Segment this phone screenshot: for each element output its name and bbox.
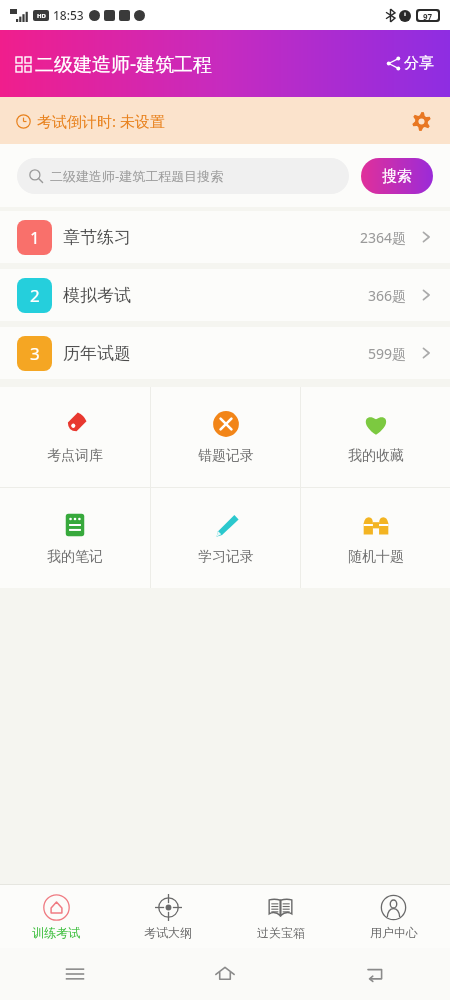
staticText: 97 <box>423 11 433 20</box>
staticText: 考试大纲 <box>144 925 192 940</box>
button[interactable]: 分享 <box>384 50 436 77</box>
button[interactable]: 1 <box>0 211 450 263</box>
button[interactable]: 错题记录 <box>151 387 300 487</box>
staticText: 错题记录 <box>198 447 254 465</box>
staticText: 1 <box>30 226 40 249</box>
staticText: 学习记录 <box>198 548 254 566</box>
other: Home <box>213 962 237 986</box>
button[interactable]: 设置 <box>406 106 436 136</box>
button[interactable]: 考试倒计时: 未设置 <box>0 97 450 144</box>
button[interactable]: 考试大纲 <box>112 885 224 948</box>
staticText: 训练考试 <box>32 925 80 940</box>
button[interactable]: 随机十题 <box>301 488 450 588</box>
staticText: 考试倒计时: 未设置 <box>37 111 165 131</box>
other: Back <box>364 963 386 985</box>
staticText: 用户中心 <box>370 925 418 940</box>
button[interactable]: 3 <box>0 327 450 379</box>
staticText: 2 <box>30 284 40 307</box>
staticText: 366题 <box>368 286 407 305</box>
button[interactable]: 训练考试 <box>0 885 112 948</box>
button[interactable]: 2 <box>0 269 450 321</box>
staticText: 我的收藏 <box>348 447 404 465</box>
staticText: 过关宝箱 <box>257 925 305 940</box>
staticText: 我的笔记 <box>47 548 103 566</box>
other: Recents <box>64 963 86 985</box>
staticText: 搜索 <box>382 167 412 186</box>
staticText: 二级建造师-建筑工程题目搜索 <box>50 167 224 185</box>
staticText: HD <box>37 12 46 20</box>
staticText: 考点词库 <box>47 447 103 465</box>
button[interactable]: 搜索 <box>361 158 433 194</box>
staticText: 随机十题 <box>348 548 404 566</box>
staticText: 3 <box>30 342 40 365</box>
button[interactable]: 我的收藏 <box>301 387 450 487</box>
button[interactable]: 用户中心 <box>337 885 450 948</box>
staticText: 2364题 <box>360 228 407 247</box>
staticText: 章节练习 <box>63 227 131 248</box>
button[interactable]: 学习记录 <box>151 488 300 588</box>
staticText: 分享 <box>404 54 434 73</box>
staticText: 二级建造师-建筑工程 <box>35 51 213 77</box>
button[interactable]: 我的笔记 <box>0 488 150 588</box>
staticText: 599题 <box>368 344 407 363</box>
staticText: 模拟考试 <box>63 285 131 306</box>
button[interactable]: 过关宝箱 <box>224 885 337 948</box>
staticText: 18:53 <box>53 7 84 23</box>
button[interactable]: 二级建造师-建筑工程题目搜索 <box>17 158 349 194</box>
button[interactable]: 考点词库 <box>0 387 150 487</box>
staticText: 历年试题 <box>63 343 131 364</box>
